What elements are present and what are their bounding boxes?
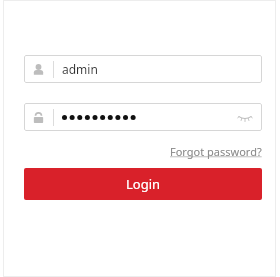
staticText: admin — [62, 61, 98, 77]
button[interactable]: admin — [24, 55, 262, 83]
button[interactable]: Show password — [151, 103, 262, 131]
staticText: Login — [126, 175, 161, 193]
button[interactable]: Show password — [24, 103, 262, 131]
button[interactable]: Forgot password? — [170, 144, 262, 159]
button[interactable]: Login — [24, 168, 262, 200]
staticText: Forgot password? — [170, 144, 262, 159]
